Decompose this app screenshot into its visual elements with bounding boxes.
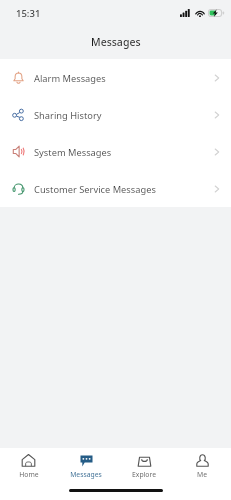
staticText: Messages xyxy=(91,35,141,49)
staticText: Explore xyxy=(132,470,156,479)
button[interactable]: Explore xyxy=(115,448,173,484)
staticText: System Messages xyxy=(34,146,112,159)
button[interactable]: System Messages xyxy=(0,133,231,170)
staticText: Messages xyxy=(70,470,102,479)
staticText: Me xyxy=(197,470,207,479)
staticText: 15:31 xyxy=(16,7,41,20)
button[interactable]: Customer Service Messages xyxy=(0,170,231,207)
button[interactable]: Sharing History xyxy=(0,96,231,133)
staticText: Home xyxy=(19,470,39,479)
button[interactable]: Home xyxy=(0,448,57,484)
staticText: Sharing History xyxy=(34,109,102,122)
staticText: Customer Service Messages xyxy=(34,183,156,196)
button[interactable]: Alarm Messages xyxy=(0,59,231,96)
button[interactable]: Messages xyxy=(57,448,115,484)
staticText: Alarm Messages xyxy=(34,72,106,85)
button[interactable]: Me xyxy=(173,448,231,484)
